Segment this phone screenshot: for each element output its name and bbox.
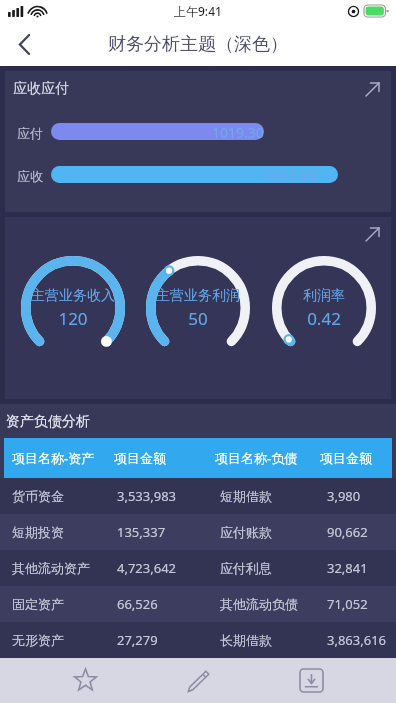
staticText: 短期借款 [220, 488, 272, 504]
staticText: 固定资产 [12, 596, 64, 612]
staticText: 财务分析主题（深色） [108, 33, 288, 56]
staticText: 项目名称-资产 [12, 449, 95, 467]
staticText: 32,841 [327, 559, 368, 577]
staticText: 项目名称-负债 [215, 449, 298, 467]
staticText: 其他流动资产 [12, 560, 90, 576]
staticText: 应收应付 [13, 80, 69, 98]
staticText: 货币资金 [12, 488, 64, 504]
button[interactable]: Expand [359, 221, 385, 247]
button[interactable]: Expand [359, 76, 385, 102]
staticText: 66,526 [117, 595, 158, 613]
staticText: 50 [188, 307, 208, 330]
button[interactable]: Back [0, 22, 48, 66]
staticText: 应付利息 [220, 560, 272, 576]
staticText: 主营业务利润 [156, 287, 240, 305]
button[interactable]: Expand [5, 217, 391, 399]
button[interactable]: 应收应付 [5, 71, 391, 212]
staticText: 无形资产 [12, 632, 64, 648]
button[interactable]: 资产负债分析 [0, 404, 396, 658]
staticText: 主营业务收入 [31, 287, 115, 305]
staticText: 1019.30 [212, 123, 264, 142]
staticText: 3,533,983 [117, 487, 177, 505]
button[interactable]: Favorite [57, 658, 113, 703]
staticText: 资产负债分析 [6, 413, 90, 431]
staticText: 0.42 [307, 307, 341, 330]
staticText: 上午9:41 [174, 3, 222, 19]
button[interactable]: Download [283, 658, 339, 703]
staticText: 27,279 [117, 631, 158, 649]
staticText: 4,723,642 [117, 559, 177, 577]
staticText: 短期投资 [12, 524, 64, 540]
staticText: 利润率 [303, 287, 345, 305]
staticText: 90,662 [327, 523, 368, 541]
staticText: 71,052 [327, 595, 368, 613]
staticText: 1603.92 [265, 166, 317, 185]
staticText: 120 [58, 307, 88, 330]
staticText: 应付 [17, 125, 43, 141]
staticText: 项目金额 [114, 450, 166, 466]
staticText: 3,980 [327, 487, 361, 505]
staticText: 3,863,616 [327, 631, 387, 649]
staticText: 应付账款 [220, 524, 272, 540]
staticText: 长期借款 [220, 632, 272, 648]
staticText: 135,337 [117, 523, 166, 541]
staticText: 其他流动负债 [220, 596, 298, 612]
staticText: 应收 [17, 168, 43, 184]
staticText: 项目金额 [320, 450, 372, 466]
button[interactable]: Edit [170, 658, 226, 703]
